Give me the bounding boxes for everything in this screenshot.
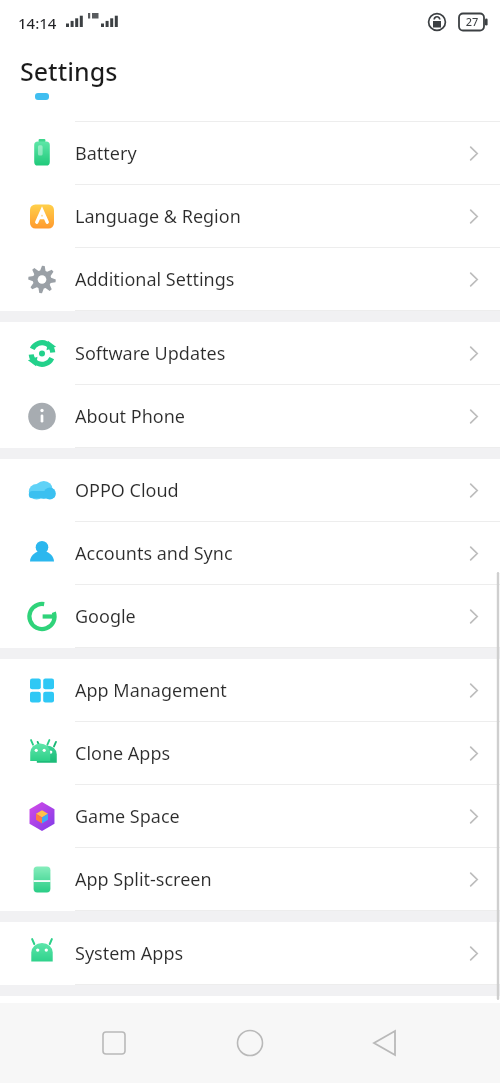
staticText: Settings (20, 54, 118, 88)
staticText: Accounts and Sync (75, 541, 233, 566)
staticText: 14:14 (18, 13, 57, 33)
button[interactable]: App Management (0, 659, 500, 722)
button[interactable]: Google (0, 585, 500, 648)
button[interactable]: Battery (0, 122, 500, 185)
button[interactable]: About Phone (0, 385, 500, 448)
button[interactable]: Clone Apps (0, 722, 500, 785)
staticText: Language & Region (75, 204, 241, 229)
button[interactable]: Home (224, 1017, 276, 1069)
button[interactable]: System Apps (0, 922, 500, 985)
button[interactable] (0, 97, 500, 122)
staticText: OPPO Cloud (75, 478, 179, 503)
button[interactable]: App Split-screen (0, 848, 500, 911)
button[interactable]: Language & Region (0, 185, 500, 248)
button[interactable]: OPPO Cloud (0, 459, 500, 522)
staticText: About Phone (75, 404, 185, 429)
staticText: Battery (75, 141, 137, 166)
button[interactable]: Recent apps (88, 1017, 140, 1069)
staticText: App Split-screen (75, 867, 212, 892)
staticText: Game Space (75, 804, 180, 829)
staticText: 27 (463, 14, 481, 29)
button[interactable]: Software Updates (0, 322, 500, 385)
staticText: Clone Apps (75, 741, 171, 766)
staticText: System Apps (75, 941, 184, 966)
staticText: Google (75, 604, 136, 629)
button[interactable]: Additional Settings (0, 248, 500, 311)
button[interactable]: Game Space (0, 785, 500, 848)
staticText: Software Updates (75, 341, 226, 366)
button[interactable]: Back (360, 1017, 412, 1069)
staticText: Additional Settings (75, 267, 235, 292)
staticText: App Management (75, 678, 227, 703)
button[interactable]: Accounts and Sync (0, 522, 500, 585)
